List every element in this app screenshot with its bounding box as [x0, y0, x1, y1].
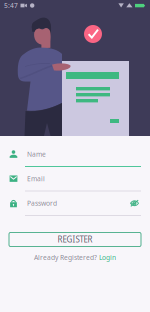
staticText: Email — [27, 174, 45, 183]
button[interactable]: Show password — [130, 199, 141, 207]
staticText: Name — [27, 150, 46, 159]
staticText: REGISTER — [57, 234, 92, 245]
staticText: Password — [27, 199, 57, 208]
staticText: Already Registered? — [34, 253, 97, 262]
button[interactable]: Already Registered? — [9, 253, 141, 261]
staticText: Login — [99, 253, 116, 262]
staticText: 5:47 — [4, 1, 18, 10]
button[interactable]: REGISTER — [9, 232, 141, 246]
